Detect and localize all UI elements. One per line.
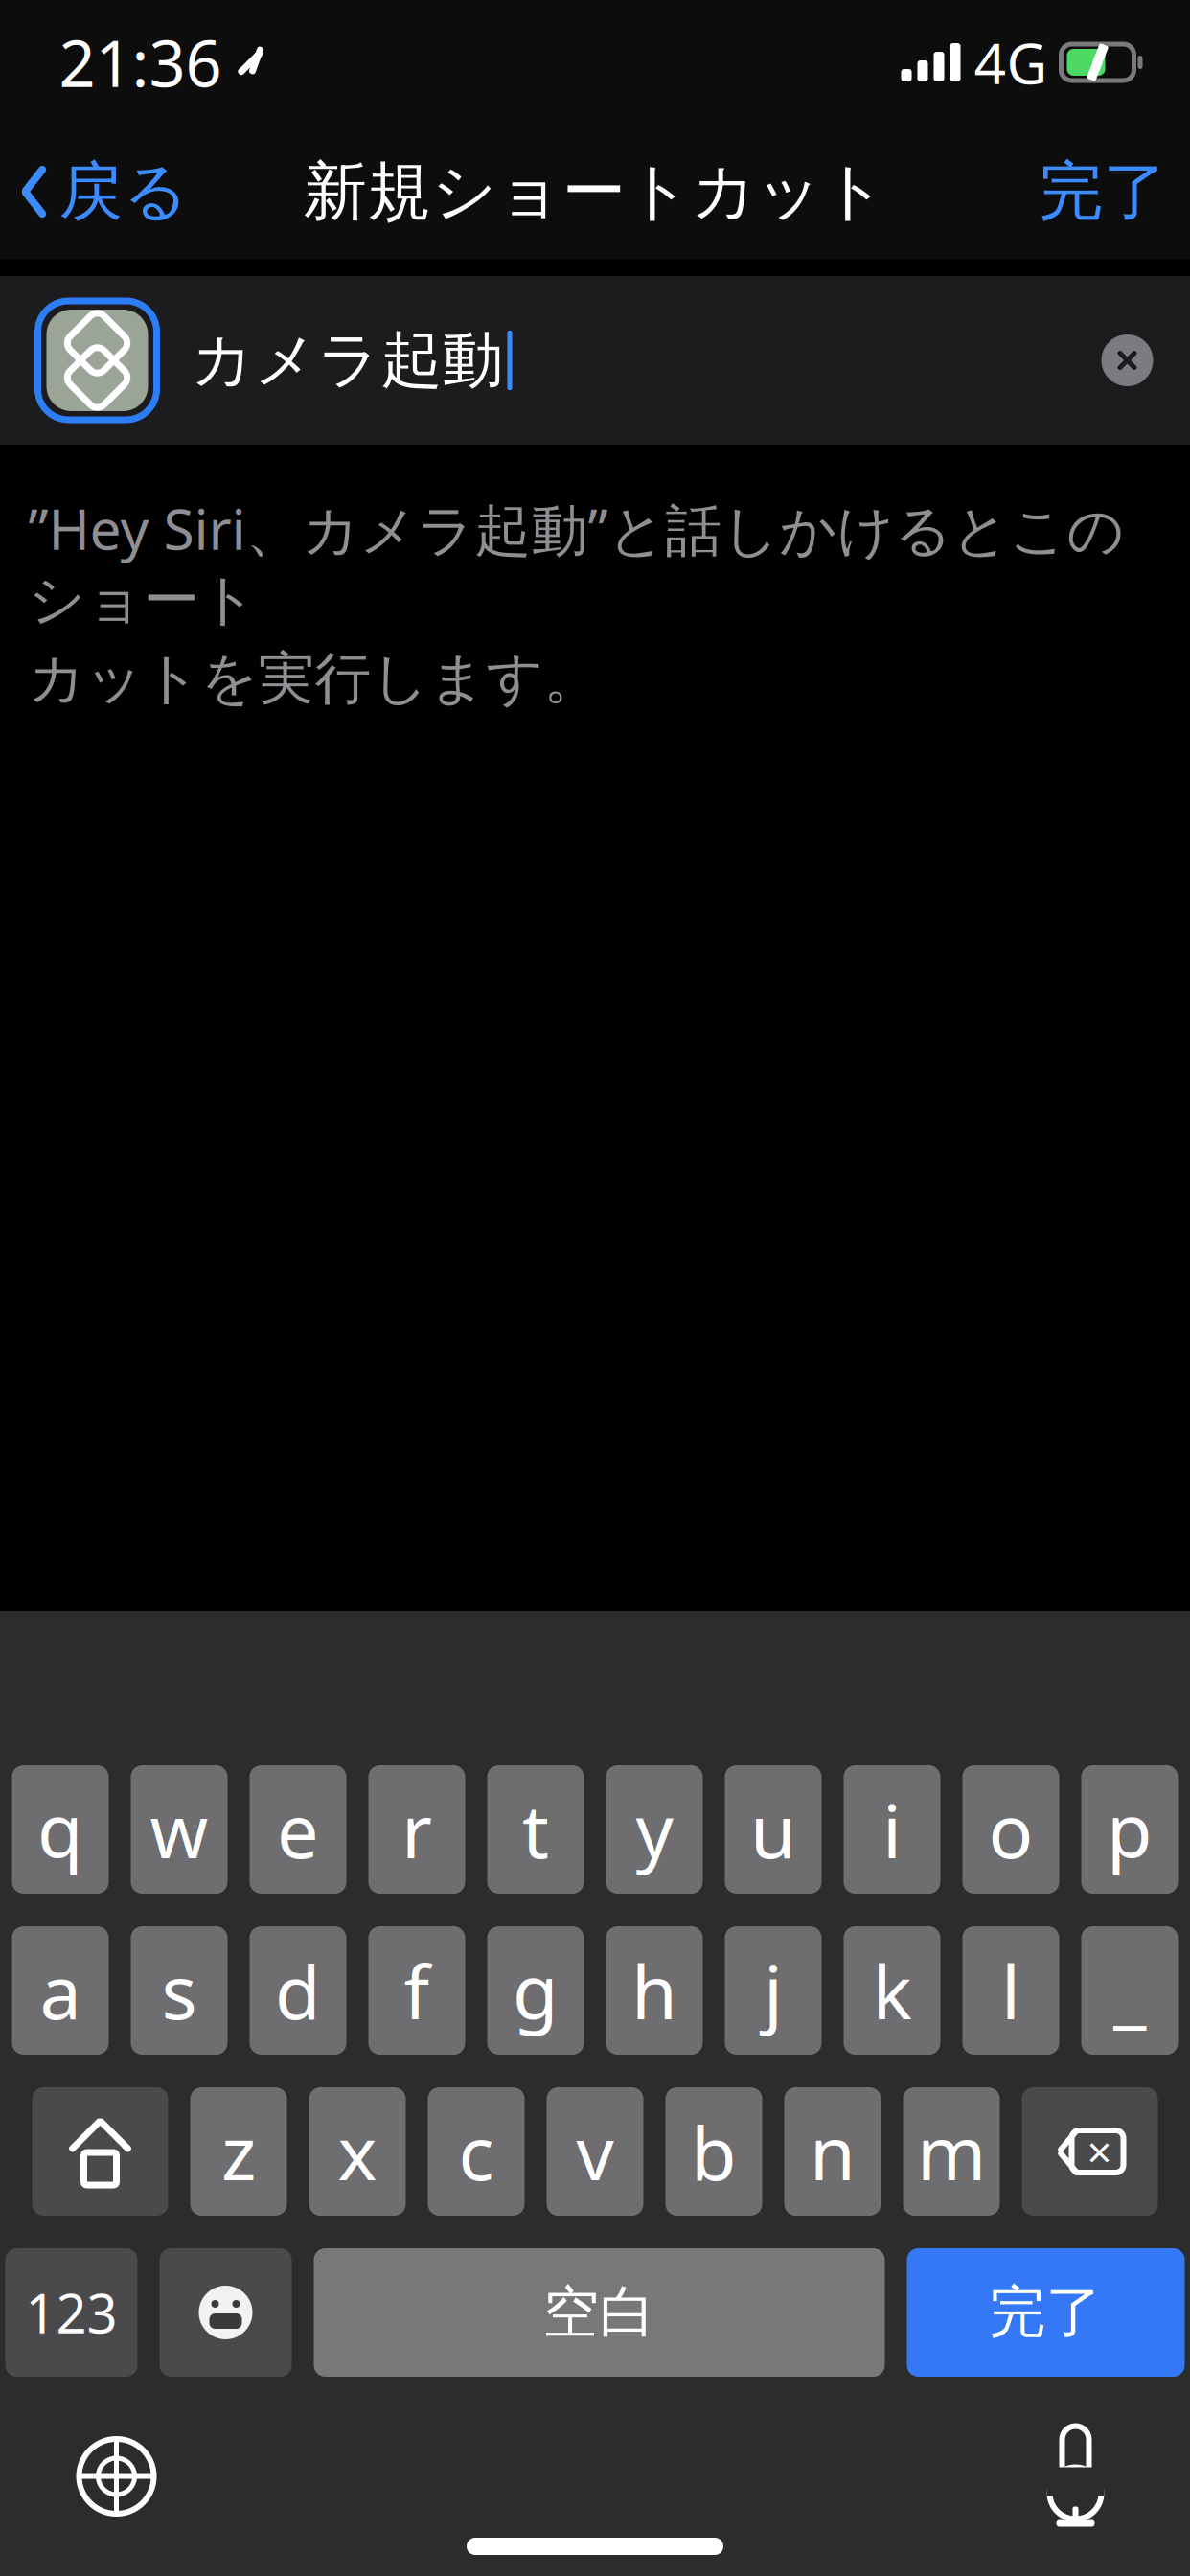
staticText: 21:36 bbox=[59, 20, 222, 105]
button[interactable]: r bbox=[368, 1765, 465, 1894]
staticText: j bbox=[764, 1941, 783, 2040]
button[interactable]: d bbox=[250, 1926, 346, 2055]
button[interactable]: t bbox=[487, 1765, 584, 1894]
button[interactable]: 次のキーボード bbox=[53, 2413, 180, 2540]
button[interactable]: 戻る bbox=[0, 135, 219, 248]
button[interactable]: k bbox=[844, 1926, 940, 2055]
staticText: 完了 bbox=[1039, 152, 1167, 231]
button[interactable]: 空白 bbox=[314, 2248, 885, 2377]
staticText: x bbox=[338, 2102, 377, 2201]
button[interactable]: o bbox=[962, 1765, 1059, 1894]
button[interactable]: q bbox=[12, 1765, 109, 1894]
button[interactable]: e bbox=[250, 1765, 346, 1894]
button[interactable]: j bbox=[725, 1926, 822, 2055]
staticText: u bbox=[750, 1780, 796, 1879]
staticText: n bbox=[810, 2102, 856, 2201]
button[interactable]: ショートカットアイコン bbox=[36, 299, 159, 422]
staticText: p bbox=[1107, 1780, 1153, 1879]
button[interactable]: a bbox=[12, 1926, 109, 2055]
button[interactable]: 完了 bbox=[907, 2248, 1185, 2377]
staticText: i bbox=[882, 1780, 902, 1879]
staticText: d bbox=[275, 1941, 321, 2040]
button[interactable]: z bbox=[190, 2087, 287, 2216]
staticText: カメラ起動 bbox=[191, 323, 503, 398]
button[interactable]: l bbox=[962, 1926, 1059, 2055]
staticText: s bbox=[161, 1941, 197, 2040]
staticText: m bbox=[917, 2102, 986, 2201]
button[interactable]: u bbox=[725, 1765, 822, 1894]
staticText: e bbox=[277, 1780, 319, 1879]
staticText: z bbox=[221, 2102, 256, 2201]
button[interactable]: p bbox=[1081, 1765, 1178, 1894]
staticText: y bbox=[636, 1780, 673, 1879]
button[interactable]: v bbox=[547, 2087, 643, 2216]
button[interactable]: Shift bbox=[32, 2087, 168, 2216]
staticText: 4G bbox=[974, 25, 1048, 100]
button[interactable]: c bbox=[428, 2087, 525, 2216]
button[interactable]: i bbox=[844, 1765, 940, 1894]
button[interactable]: 完了 bbox=[1007, 135, 1190, 248]
button[interactable]: b bbox=[665, 2087, 762, 2216]
staticText: カットを実行します。 bbox=[28, 644, 600, 713]
button[interactable]: 音声入力 bbox=[1014, 2398, 1137, 2555]
button[interactable]: y bbox=[606, 1765, 703, 1894]
button[interactable]: 消去 bbox=[1100, 333, 1154, 387]
button[interactable]: x bbox=[309, 2087, 406, 2216]
staticText: c bbox=[458, 2102, 494, 2201]
staticText: f bbox=[404, 1941, 430, 2040]
button[interactable]: 削除 bbox=[1022, 2087, 1158, 2216]
staticText: h bbox=[631, 1941, 677, 2040]
staticText: g bbox=[513, 1941, 559, 2040]
staticText: 新規ショートカット bbox=[303, 152, 887, 231]
button[interactable]: h bbox=[606, 1926, 703, 2055]
staticText: o bbox=[988, 1780, 1033, 1879]
staticText: ”Hey Siri、カメラ起動”と話しかけるとこのショート bbox=[28, 491, 1124, 635]
staticText: q bbox=[37, 1780, 83, 1879]
staticText: k bbox=[872, 1941, 912, 2040]
button[interactable]: f bbox=[368, 1926, 465, 2055]
staticText: 戻る bbox=[59, 152, 188, 231]
staticText: r bbox=[401, 1780, 432, 1879]
button[interactable]: g bbox=[487, 1926, 584, 2055]
button[interactable]: s bbox=[131, 1926, 228, 2055]
staticText: 123 bbox=[25, 2277, 117, 2348]
staticText: t bbox=[522, 1780, 549, 1879]
staticText: 完了 bbox=[989, 2278, 1102, 2347]
staticText: w bbox=[150, 1780, 208, 1879]
staticText: v bbox=[576, 2102, 614, 2201]
button[interactable]: n bbox=[784, 2087, 881, 2216]
button[interactable]: 絵文字 bbox=[160, 2248, 292, 2377]
button[interactable]: 123 bbox=[5, 2248, 137, 2377]
button[interactable]: w bbox=[131, 1765, 228, 1894]
button[interactable]: _ bbox=[1081, 1926, 1178, 2055]
button[interactable]: m bbox=[903, 2087, 1000, 2216]
staticText: × bbox=[1087, 2123, 1112, 2180]
staticText: a bbox=[40, 1941, 81, 2040]
staticText: l bbox=[1001, 1941, 1020, 2040]
staticText: b bbox=[691, 2102, 737, 2201]
staticText: _ bbox=[1113, 1941, 1146, 2040]
staticText: 空白 bbox=[543, 2278, 656, 2347]
